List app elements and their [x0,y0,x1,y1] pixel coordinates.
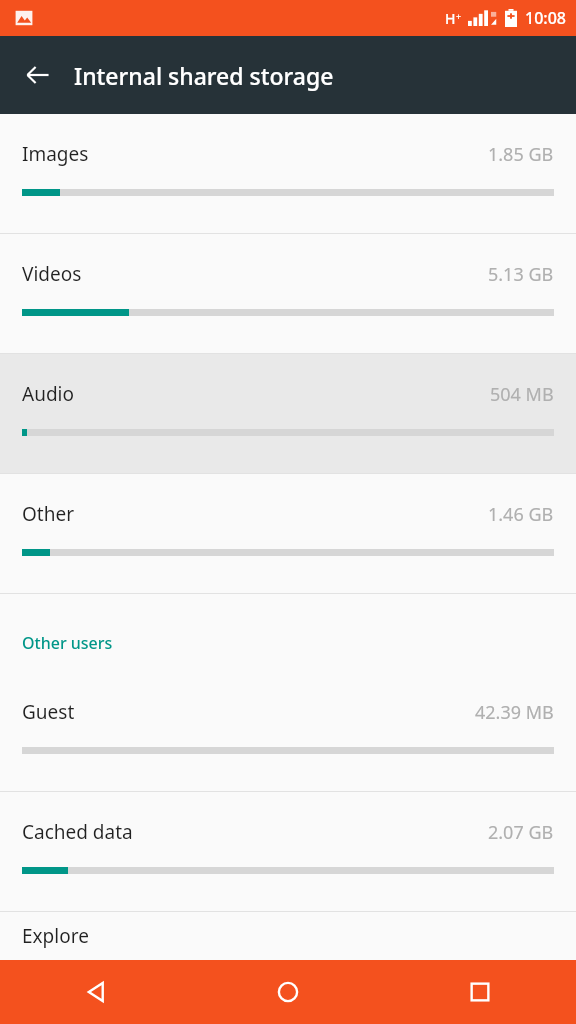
button[interactable]: Explore [0,912,576,960]
staticText: Audio [22,381,74,407]
button[interactable]: Home [192,960,384,1024]
staticText: H [445,9,456,28]
button[interactable]: Images [0,114,576,233]
button[interactable]: Cached data [0,792,576,911]
staticText: Other [22,501,75,527]
button[interactable]: Guest [0,672,576,791]
staticText: 1.46 GB [488,502,554,527]
staticText: + [456,10,462,22]
staticText: 2.07 GB [488,820,554,845]
button[interactable]: Back [0,960,192,1024]
staticText: Videos [22,261,82,287]
staticText: 1.85 GB [488,142,554,167]
button[interactable]: Other [0,474,576,593]
staticText: 42.39 MB [475,700,554,725]
staticText: Cached data [22,819,133,845]
staticText: Other users [22,632,113,654]
staticText: 504 MB [490,382,554,407]
staticText: 5.13 GB [488,262,554,287]
staticText: Internal shared storage [74,60,334,91]
button[interactable]: Recent apps [384,960,576,1024]
button[interactable]: Audio [0,354,576,473]
button[interactable]: Back [10,47,66,103]
staticText: Images [22,141,89,167]
staticText: Guest [22,699,75,725]
button[interactable]: Videos [0,234,576,353]
staticText: Explore [22,923,89,949]
staticText: 10:08 [525,7,566,29]
